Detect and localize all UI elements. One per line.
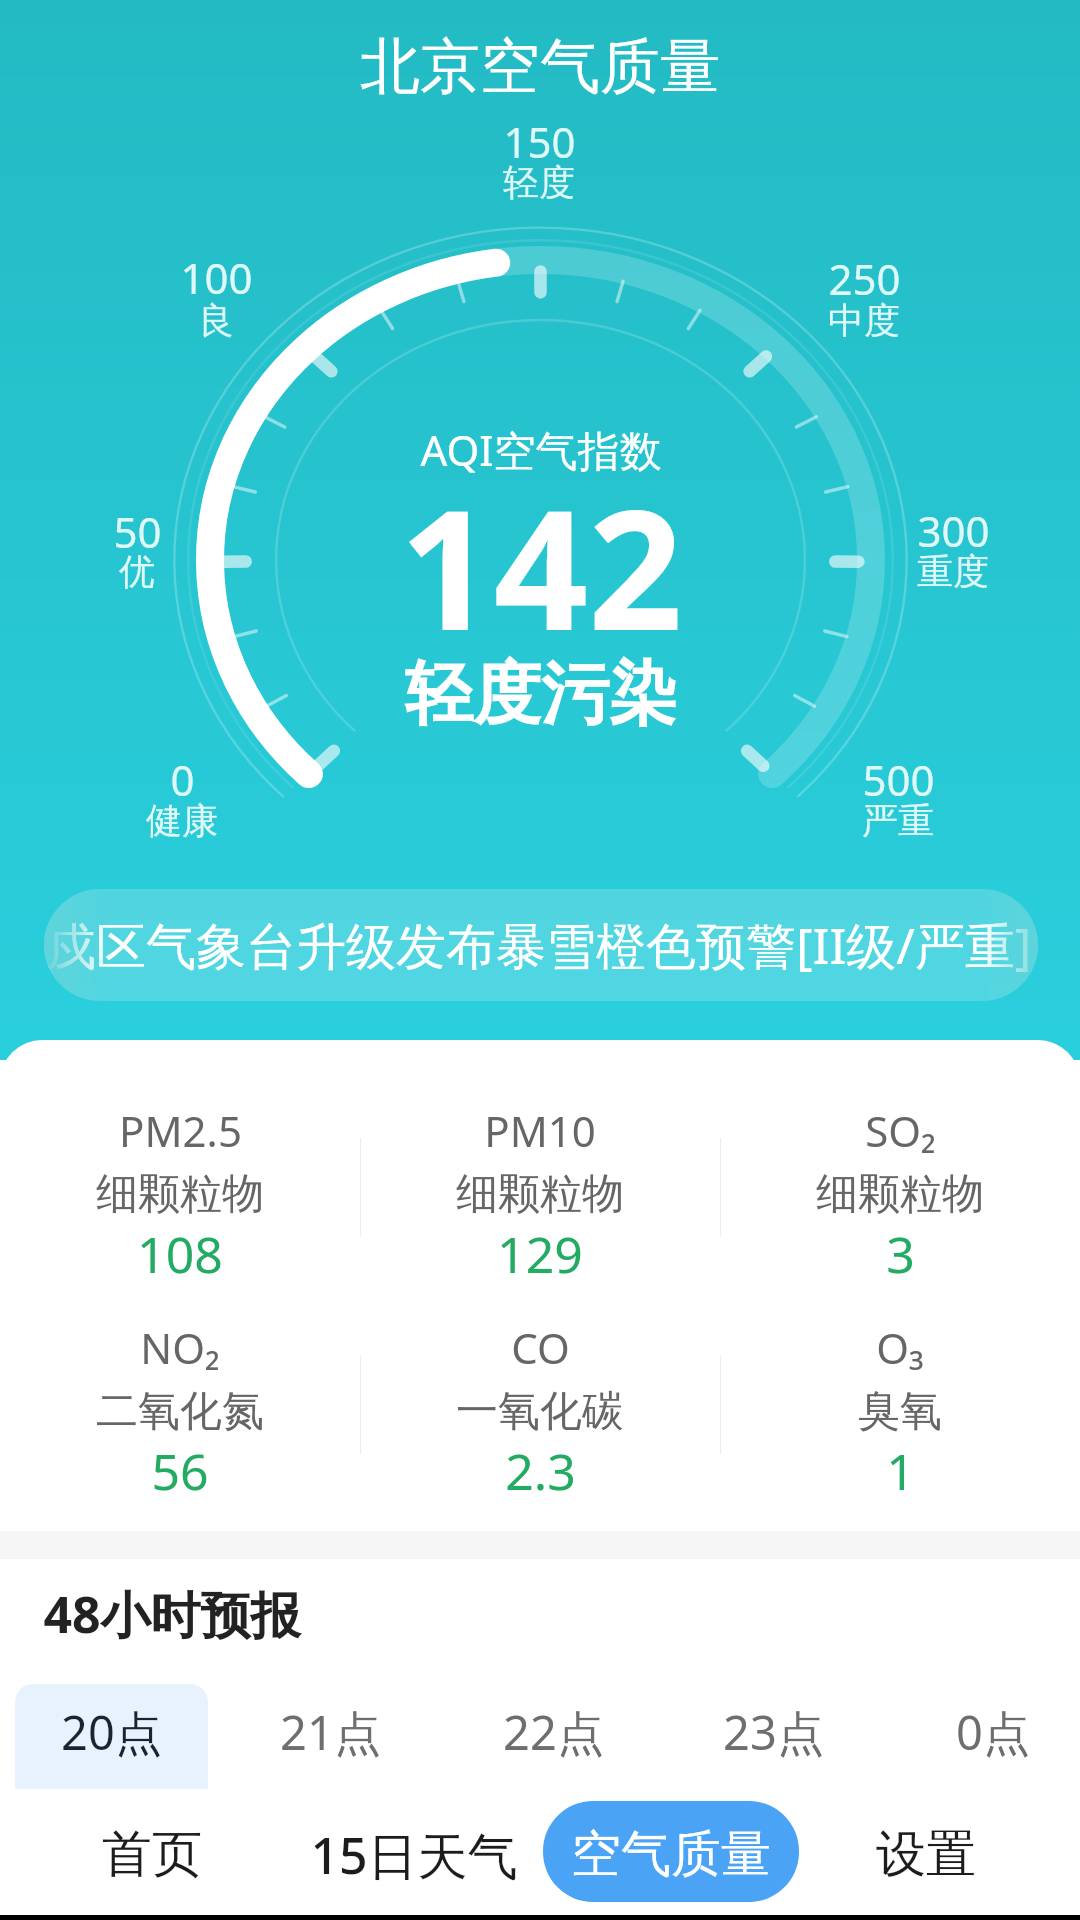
staticText: 一氧化碳: [456, 1385, 624, 1438]
button[interactable]: 15日天气: [286, 1801, 542, 1902]
button[interactable]: 23点: [677, 1684, 870, 1789]
staticText: PM2.5: [119, 1102, 242, 1159]
staticText: 100: [180, 249, 253, 306]
staticText: NO₂: [140, 1319, 220, 1376]
staticText: 轻度污染: [405, 652, 677, 738]
staticText: 142: [399, 454, 683, 679]
staticText: 细颗粒物: [456, 1168, 624, 1221]
staticText: 细颗粒物: [96, 1168, 264, 1221]
staticText: 良: [198, 298, 234, 343]
staticText: 空气质量: [571, 1823, 771, 1886]
button[interactable]: 空气质量: [543, 1801, 799, 1902]
staticText: 优: [119, 549, 155, 594]
staticText: 3: [886, 1220, 915, 1288]
button[interactable]: 设置: [798, 1801, 1054, 1902]
staticText: 48小时预报: [43, 1580, 301, 1648]
staticText: 健康: [146, 798, 218, 843]
staticText: 0: [170, 751, 195, 808]
staticText: 北京空气质量: [360, 29, 720, 105]
staticText: SO₂: [865, 1102, 936, 1159]
staticText: 22点: [503, 1700, 604, 1764]
staticText: AQI空气指数: [420, 421, 662, 478]
staticText: 21点: [280, 1700, 381, 1764]
staticText: 108: [137, 1220, 223, 1288]
staticText: 二氧化氮: [96, 1385, 264, 1438]
staticText: 150: [503, 113, 576, 170]
button[interactable]: 21点: [234, 1684, 427, 1789]
staticText: 15日天气: [310, 1821, 518, 1889]
staticText: 20点: [61, 1700, 162, 1764]
staticText: CO: [511, 1319, 570, 1376]
staticText: 300: [917, 502, 990, 559]
staticText: 2.3: [505, 1437, 576, 1505]
staticText: 重度: [917, 549, 989, 594]
button[interactable]: 戍区气象台升级发布暴雪橙色预警[II级/严重]: [44, 889, 1038, 1001]
staticText: 129: [497, 1220, 583, 1288]
button[interactable]: 首页: [24, 1801, 280, 1902]
staticText: 轻度: [503, 160, 575, 205]
staticText: 中度: [828, 298, 900, 343]
staticText: 1: [886, 1437, 915, 1505]
staticText: 250: [828, 250, 901, 307]
staticText: 严重: [862, 798, 934, 843]
staticText: 臭氧: [858, 1385, 942, 1438]
staticText: 23点: [723, 1700, 824, 1764]
staticText: 56: [151, 1437, 209, 1505]
staticText: 设置: [876, 1823, 976, 1886]
staticText: 500: [862, 751, 935, 808]
staticText: 戍区气象台升级发布暴雪橙色预警[II级/严重]: [46, 911, 1038, 979]
staticText: O₃: [876, 1319, 924, 1376]
staticText: PM10: [484, 1102, 596, 1159]
staticText: 细颗粒物: [816, 1168, 984, 1221]
button[interactable]: 0点: [896, 1684, 1080, 1789]
button[interactable]: 20点: [15, 1684, 208, 1789]
staticText: 首页: [102, 1823, 202, 1886]
staticText: 50: [113, 503, 162, 560]
staticText: 0点: [956, 1700, 1030, 1764]
button[interactable]: 22点: [457, 1684, 650, 1789]
